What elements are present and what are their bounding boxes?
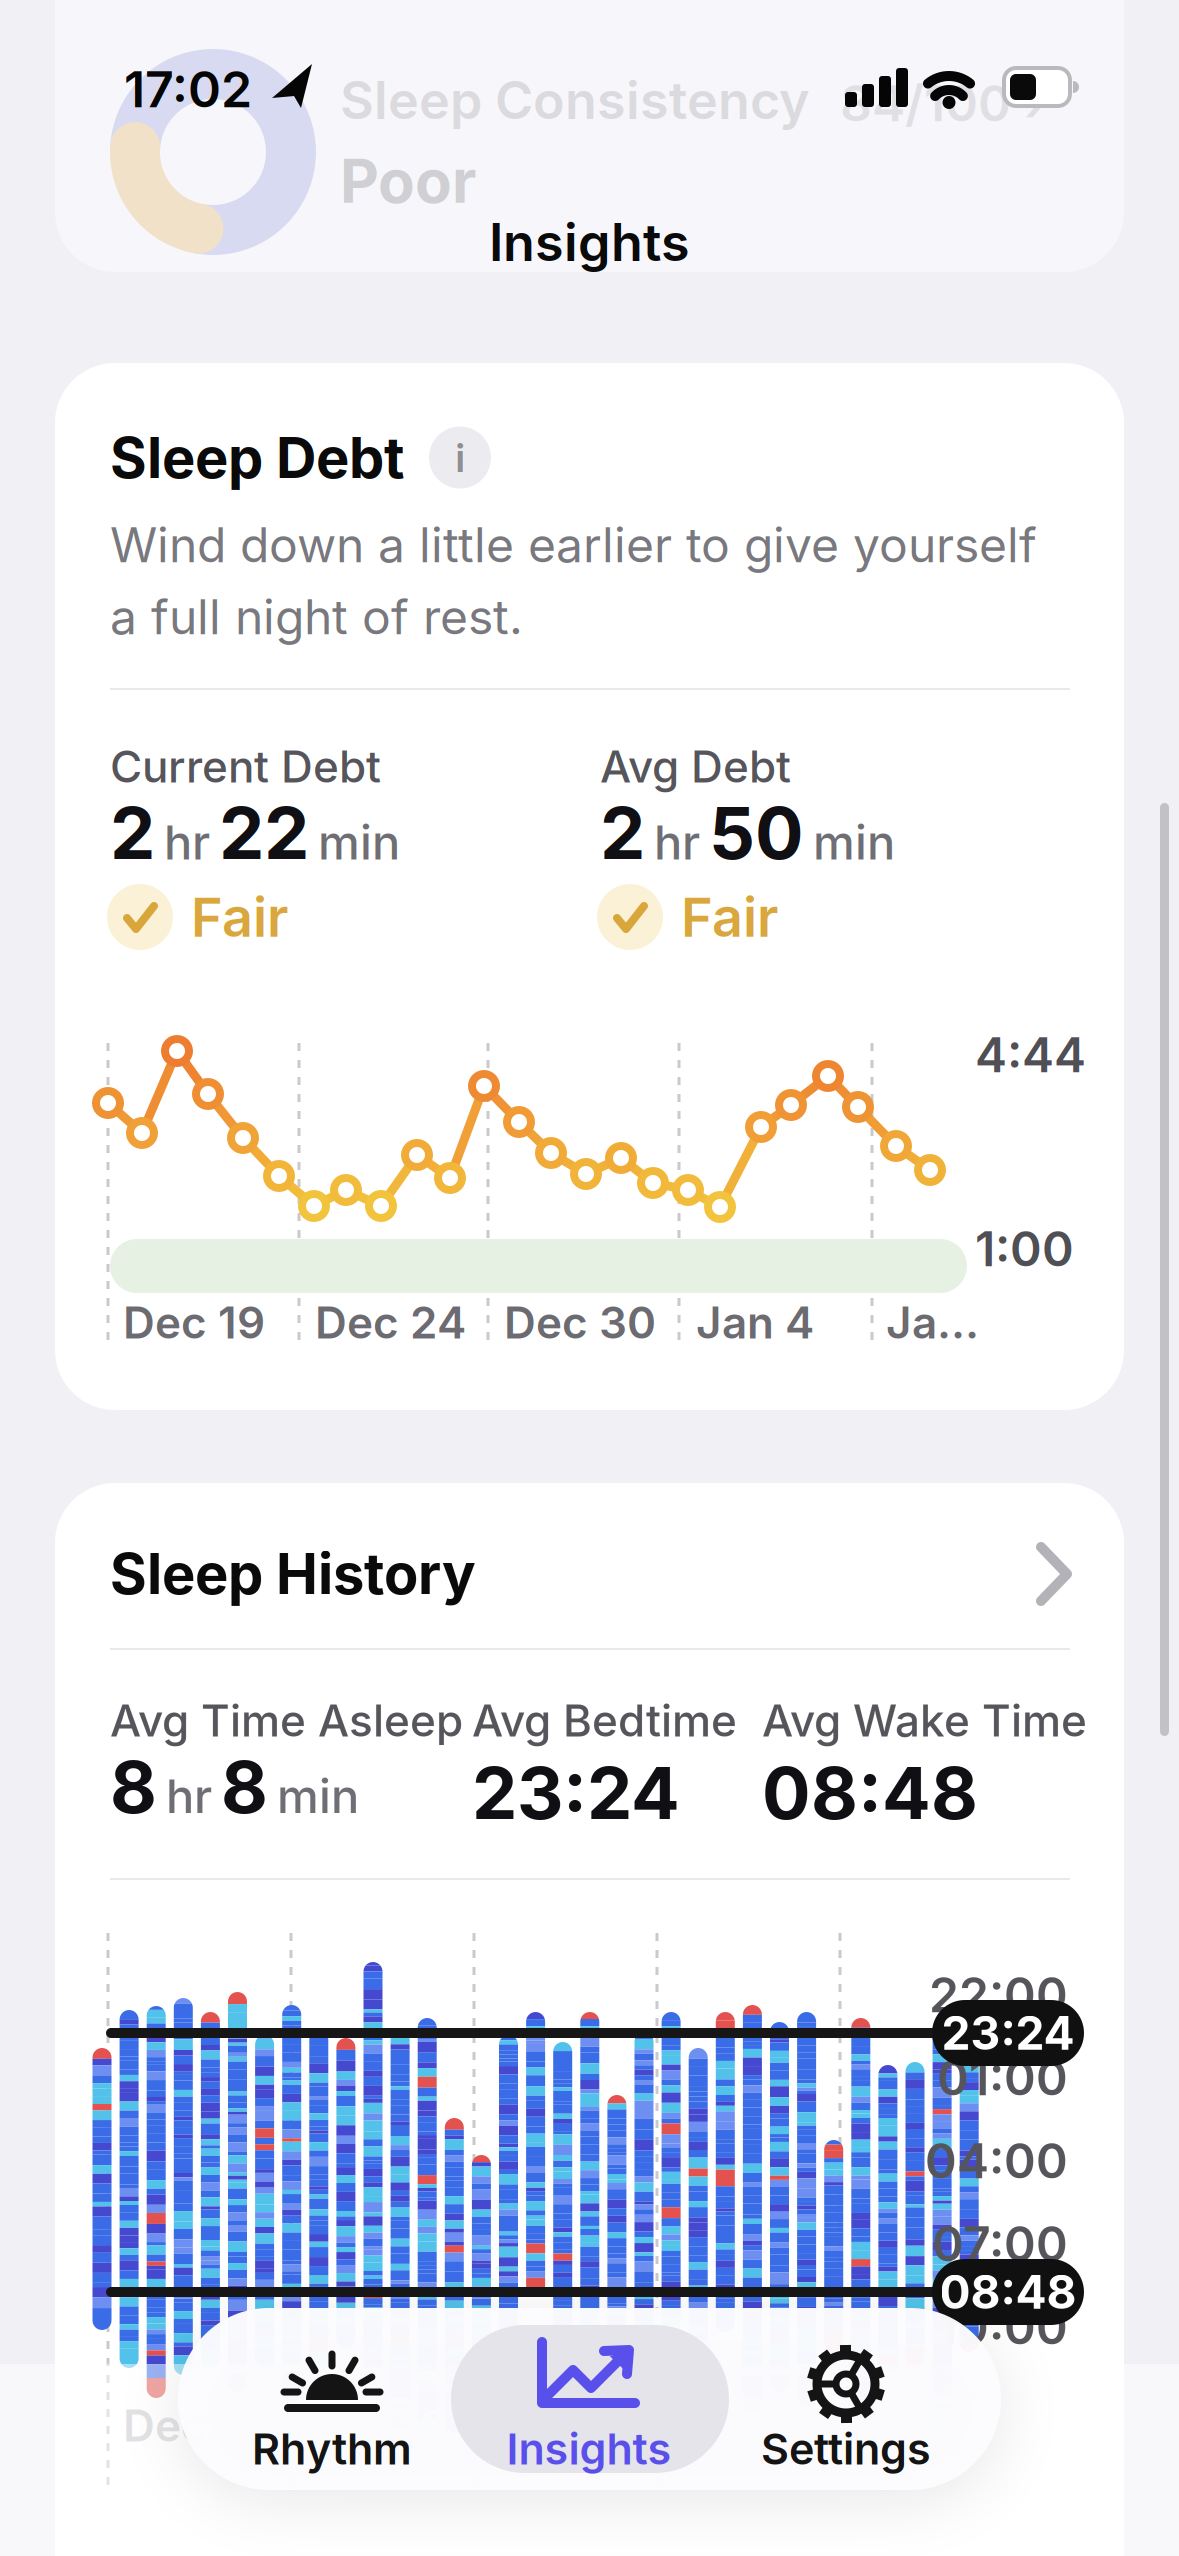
staticText: 08:48 (939, 2265, 1076, 2319)
staticText: 23:24 (472, 1751, 680, 1835)
staticText: Sleep Consistency (340, 70, 810, 130)
staticText: Dec 26 (489, 2400, 639, 2451)
staticText: i (455, 434, 464, 481)
staticText: Dec 19 (123, 1297, 265, 1348)
staticText: Fair (681, 886, 778, 948)
staticText: 4:44 (975, 1027, 1086, 1083)
staticText: Avg Debt (600, 741, 791, 792)
staticText: 07:00 (932, 2216, 1068, 2272)
staticText: 8 (110, 1745, 157, 1829)
staticText: Poor (340, 146, 476, 216)
staticText: Dec 19 (306, 2400, 448, 2451)
staticText: hr (654, 815, 700, 870)
staticText: Current Debt (110, 741, 381, 792)
staticText: 1:00 (975, 1221, 1074, 1277)
staticText: hr (166, 1769, 212, 1824)
staticText: Insights (489, 212, 690, 272)
button[interactable]: Rhythm (204, 2312, 460, 2488)
staticText: 17:02 (124, 60, 252, 118)
staticText: Insights (506, 2424, 671, 2474)
staticText: 2 (600, 791, 645, 875)
staticText: Fair (191, 886, 288, 948)
staticText: Avg Bedtime (472, 1695, 737, 1746)
button[interactable]: Settings (718, 2312, 974, 2488)
staticText: a full night of rest. (110, 589, 523, 645)
staticText: 01:00 (937, 2050, 1068, 2106)
staticText: Jan 4 (696, 1297, 814, 1348)
staticText: Dec 30 (504, 1297, 656, 1348)
staticText: 04:00 (925, 2133, 1068, 2189)
staticText: Settings (761, 2424, 931, 2474)
staticText: min (277, 1769, 359, 1824)
staticText: Wind down a little earlier to give yours… (110, 517, 1037, 573)
staticText: 84/100 › (840, 74, 1045, 132)
staticText: 2 (110, 791, 155, 875)
staticText: Avg Time Asleep (110, 1695, 463, 1746)
staticText: min (813, 815, 895, 870)
staticText: 50 (709, 791, 804, 875)
button[interactable]: Sleep History (55, 1483, 1124, 1623)
staticText: Ja… (886, 1297, 979, 1348)
button[interactable]: Insights (461, 2312, 717, 2488)
staticText: Sleep History (110, 1541, 476, 1606)
staticText: min (318, 815, 400, 870)
staticText: Avg Wake Time (762, 1695, 1087, 1746)
staticText: 10:00 (937, 2299, 1068, 2355)
staticText: Ja… (855, 2400, 948, 2451)
staticText: hr (164, 815, 210, 870)
staticText: 22 (219, 791, 309, 875)
staticText: Dec 12 (123, 2400, 264, 2451)
staticText: Rhythm (252, 2424, 412, 2474)
staticText: 23:24 (941, 2006, 1074, 2060)
staticText: 08:48 (762, 1751, 978, 1835)
button[interactable]: About Sleep Debt (429, 426, 491, 488)
staticText: Jan 2 (672, 2400, 788, 2451)
staticText: 8 (221, 1745, 268, 1829)
staticText: Dec 24 (315, 1297, 466, 1348)
staticText: 22:00 (929, 1967, 1068, 2023)
staticText: Sleep Debt (110, 425, 405, 490)
